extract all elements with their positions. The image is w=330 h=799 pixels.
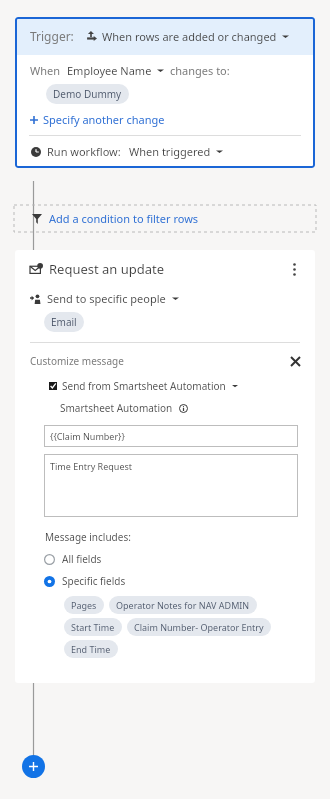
staticText: End Time [71, 643, 111, 655]
button[interactable]: Demo Dummy [46, 84, 129, 104]
button[interactable]: Pages [64, 596, 104, 614]
staticText: changes to: [170, 63, 230, 78]
button[interactable]: Time Entry Request [44, 454, 298, 517]
staticText: Operator Notes for NAV ADMIN [116, 599, 250, 611]
staticText: All fields [62, 552, 102, 566]
staticText: Send from Smartsheet Automation [62, 379, 226, 393]
button[interactable]: Start Time [64, 618, 122, 636]
staticText: Start Time [71, 621, 115, 633]
button[interactable]: All fields [44, 552, 102, 566]
staticText: Send to specific people [47, 291, 166, 306]
staticText: Run workflow: [47, 144, 121, 159]
button[interactable]: Close [287, 353, 303, 369]
staticText: Add a condition to filter rows [49, 211, 199, 226]
staticText: Email [51, 315, 77, 329]
button[interactable]: End Time [64, 640, 118, 658]
staticText: Time Entry Request [50, 460, 133, 472]
button[interactable]: Claim Number- Operator Entry [127, 618, 271, 636]
staticText: {{Claim Number}} [50, 430, 125, 442]
button[interactable]: Add a condition to filter rows [14, 205, 316, 232]
button[interactable]: More options [285, 260, 303, 278]
staticText: Specific fields [62, 574, 126, 588]
staticText: Claim Number- Operator Entry [134, 621, 264, 633]
staticText: Message includes: [45, 530, 131, 544]
staticText: Demo Dummy [53, 87, 122, 101]
button[interactable]: Operator Notes for NAV ADMIN [109, 596, 257, 614]
staticText: Pages [71, 599, 97, 611]
staticText: When [30, 63, 61, 78]
staticText: Specify another change [43, 112, 165, 127]
staticText: Trigger: [30, 28, 74, 44]
button[interactable]: Specific fields [44, 574, 126, 588]
staticText: When rows are added or changed [102, 29, 277, 44]
button[interactable]: Trigger: [15, 17, 315, 55]
button[interactable]: Specify another change [30, 112, 165, 127]
staticText: Customize message [30, 354, 124, 368]
staticText: Smartsheet Automation [60, 401, 173, 415]
staticText: Request an update [49, 260, 165, 278]
staticText: When triggered [129, 144, 211, 159]
staticText: Employee Name [67, 63, 152, 78]
button[interactable]: Add step [22, 755, 45, 778]
button[interactable]: Email [44, 312, 84, 332]
button[interactable]: {{Claim Number}} [44, 425, 298, 447]
